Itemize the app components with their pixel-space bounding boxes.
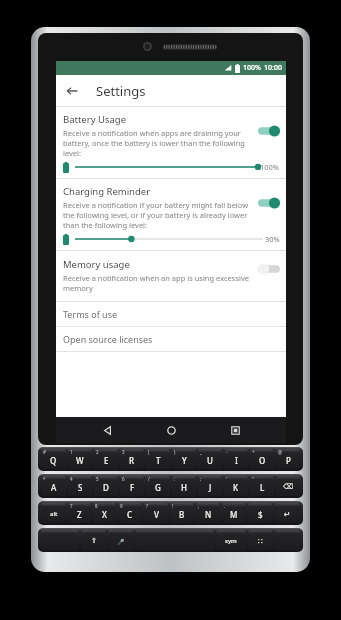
button[interactable]: key <box>135 530 214 550</box>
button[interactable]: ⌫ <box>276 476 300 496</box>
staticText: G <box>155 482 161 493</box>
staticText: J <box>209 482 212 493</box>
staticText: 4 <box>70 476 73 482</box>
staticText: ↵ <box>284 510 291 519</box>
button[interactable]: key <box>41 530 79 550</box>
button[interactable]: B <box>170 503 194 523</box>
button[interactable]: H <box>172 476 196 496</box>
staticText: ' <box>226 476 228 482</box>
staticText: Receive a notification when apps are dra… <box>63 128 254 158</box>
button[interactable]: Toggle on <box>258 125 280 137</box>
button[interactable]: sym <box>216 530 246 550</box>
button[interactable]: Z <box>68 503 91 523</box>
staticText: Battery Usage <box>63 113 126 126</box>
button[interactable]: Back <box>61 80 83 102</box>
staticText: 10:00 <box>264 63 282 73</box>
staticText: 7 <box>70 503 73 509</box>
button[interactable]: K <box>224 476 248 496</box>
button[interactable]: P <box>276 449 300 469</box>
button[interactable]: alt <box>41 503 66 523</box>
staticText: P <box>286 455 291 466</box>
staticText: 100% <box>243 63 261 73</box>
staticText: H <box>181 482 187 493</box>
button[interactable]: I <box>224 449 248 469</box>
staticText: U <box>207 455 213 466</box>
button[interactable]: V <box>144 503 168 523</box>
staticText: I <box>235 455 238 466</box>
button[interactable]: ∷ <box>248 530 273 550</box>
staticText: sym <box>225 537 237 545</box>
staticText: K <box>233 482 239 493</box>
button[interactable]: J <box>198 476 222 496</box>
button[interactable]: D <box>94 476 118 496</box>
staticText: / <box>148 476 150 482</box>
button[interactable]: C <box>118 503 142 523</box>
staticText: _ <box>200 449 202 455</box>
button[interactable]: ↵ <box>274 503 300 523</box>
staticText: @ <box>278 449 283 455</box>
staticText: 30% <box>265 234 280 244</box>
staticText: # <box>43 449 46 455</box>
button[interactable]: Open source licenses <box>56 327 286 351</box>
button[interactable]: key <box>275 530 300 550</box>
staticText: T <box>156 455 161 466</box>
button[interactable]: G <box>146 476 170 496</box>
staticText: C <box>127 509 133 520</box>
staticText: ? <box>146 503 148 509</box>
button[interactable]: U <box>198 449 222 469</box>
button[interactable]: Terms of use <box>56 302 286 326</box>
staticText: alt <box>50 510 58 518</box>
staticText: - <box>226 449 228 455</box>
staticText: $ <box>258 509 263 520</box>
staticText: M <box>230 509 238 520</box>
staticText: 2 <box>96 449 99 455</box>
staticText: ! <box>172 503 174 509</box>
button[interactable]: W <box>68 449 92 469</box>
button[interactable]: X <box>93 503 116 523</box>
button[interactable]: E <box>94 449 118 469</box>
staticText: ( <box>148 449 150 455</box>
button[interactable]: L <box>250 476 274 496</box>
button[interactable]: Q <box>41 449 66 469</box>
button[interactable]: Toggle on <box>258 197 280 209</box>
button[interactable]: F <box>120 476 144 496</box>
staticText: . <box>224 503 226 509</box>
staticText: A <box>51 482 57 493</box>
staticText: ; <box>200 476 202 482</box>
staticText: B <box>179 509 185 520</box>
button[interactable]: Recent apps <box>222 417 248 443</box>
button[interactable]: Back <box>94 417 120 443</box>
button[interactable]: Battery Usage <box>56 107 286 179</box>
staticText: " <box>252 476 254 482</box>
button[interactable]: T <box>146 449 170 469</box>
button[interactable]: Memory usage <box>56 251 286 301</box>
button[interactable]: S <box>68 476 92 496</box>
staticText: Y <box>182 455 187 466</box>
staticText: 6 <box>122 476 125 482</box>
button[interactable]: 🎤 <box>108 530 133 550</box>
button[interactable]: ⇧ <box>81 530 106 550</box>
staticText: S <box>78 482 83 493</box>
staticText: E <box>104 455 109 466</box>
button[interactable]: M <box>222 503 246 523</box>
staticText: ⇧ <box>91 537 97 545</box>
button[interactable]: Y <box>172 449 196 469</box>
button[interactable]: Charging Reminder <box>56 179 286 251</box>
button[interactable]: O <box>250 449 274 469</box>
button[interactable]: Toggle off <box>258 263 280 275</box>
staticText: 5 <box>96 476 99 482</box>
staticText: Receive a notification when an app is us… <box>63 273 254 293</box>
staticText: Memory usage <box>63 258 130 271</box>
staticText: N <box>205 509 212 520</box>
button[interactable]: $ <box>248 503 272 523</box>
staticText: , <box>198 503 200 509</box>
staticText: 3 <box>122 449 125 455</box>
staticText: X <box>102 509 107 520</box>
button[interactable]: N <box>196 503 220 523</box>
staticText: 🎤 <box>117 538 125 545</box>
staticText: Open source licenses <box>63 333 153 345</box>
button[interactable]: R <box>120 449 144 469</box>
button[interactable]: Home <box>158 417 184 443</box>
button[interactable]: A <box>41 476 66 496</box>
staticText: Z <box>77 509 82 520</box>
